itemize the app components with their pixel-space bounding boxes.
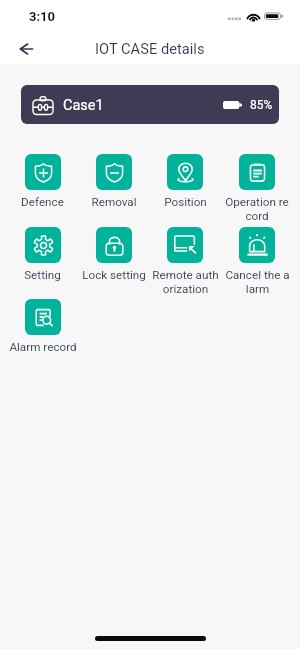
- button[interactable]: Case1: [21, 85, 279, 124]
- button[interactable]: Back: [12, 35, 40, 63]
- button[interactable]: Lock setting: [78, 227, 149, 282]
- button[interactable]: Operation re cord: [221, 154, 293, 223]
- staticText: Defence: [21, 195, 64, 209]
- staticText: 85%: [250, 98, 273, 112]
- button[interactable]: Remote auth orization: [149, 227, 221, 296]
- staticText: Cancel the a larm: [225, 268, 290, 296]
- button[interactable]: Removal: [78, 154, 149, 209]
- button[interactable]: Alarm record: [7, 299, 78, 354]
- staticText: Setting: [24, 268, 61, 282]
- staticText: Operation re cord: [225, 195, 289, 223]
- button[interactable]: Position: [149, 154, 221, 209]
- staticText: Remote auth orization: [152, 268, 219, 296]
- staticText: Case1: [63, 97, 104, 114]
- staticText: Position: [164, 195, 207, 209]
- button[interactable]: Defence: [7, 154, 78, 209]
- staticText: 3:10: [29, 9, 56, 24]
- staticText: Removal: [91, 195, 137, 209]
- staticText: Alarm record: [9, 340, 77, 354]
- button[interactable]: Setting: [7, 227, 78, 282]
- button[interactable]: Cancel the a larm: [221, 227, 293, 296]
- staticText: IOT CASE details: [95, 40, 205, 57]
- staticText: Lock setting: [82, 268, 146, 282]
